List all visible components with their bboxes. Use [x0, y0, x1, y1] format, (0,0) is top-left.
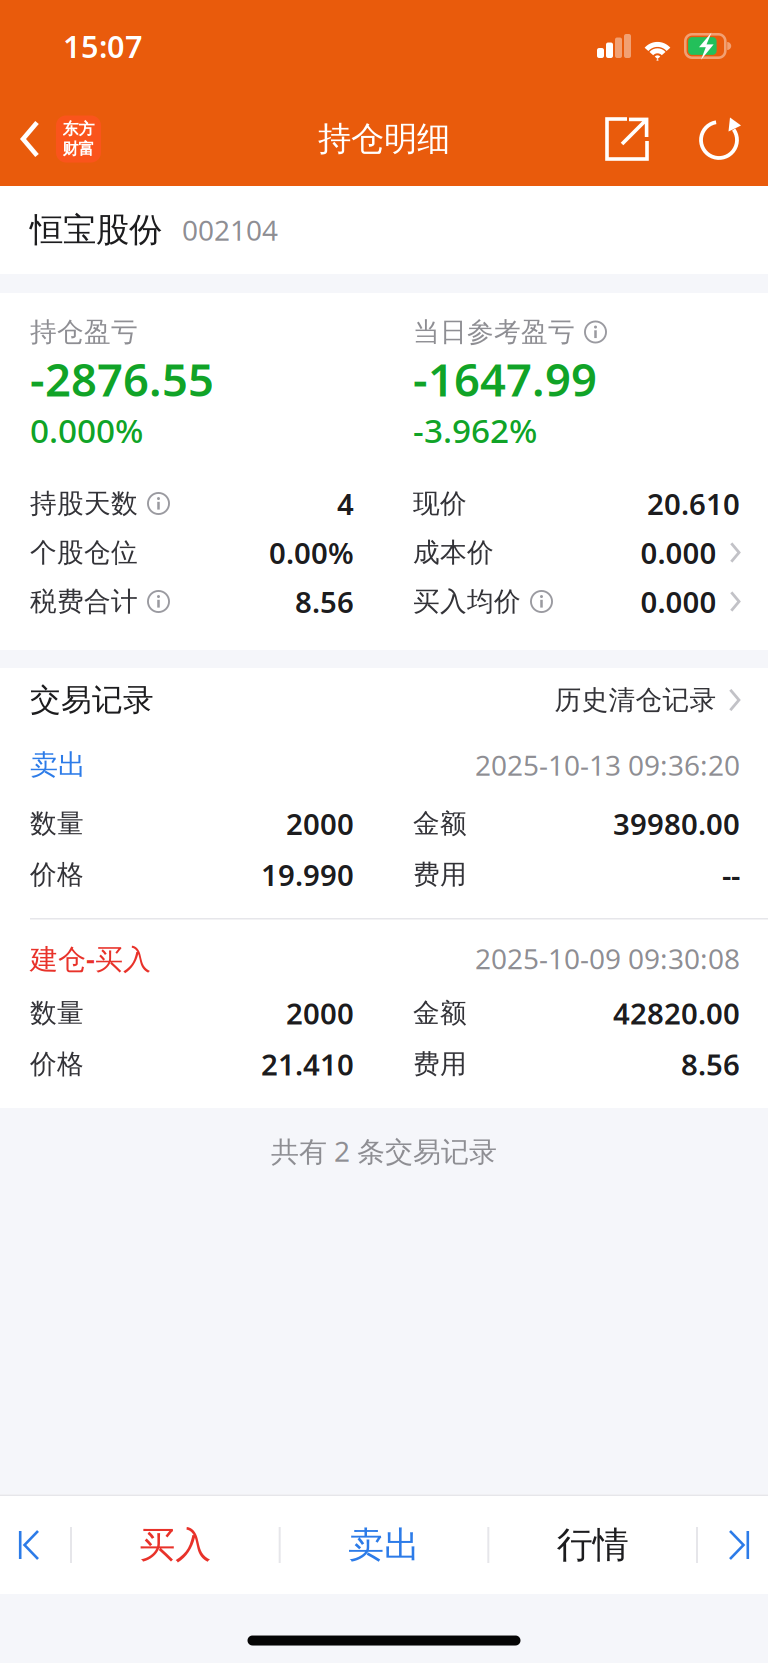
- staticText: 持仓明细: [318, 118, 450, 159]
- staticText: 数量: [30, 807, 84, 840]
- button[interactable]: Back: [0, 99, 101, 178]
- staticText: 金额: [413, 807, 467, 840]
- staticText: -2876.55: [30, 349, 214, 409]
- staticText: 卖出: [348, 1523, 420, 1567]
- button[interactable]: Next: [698, 1496, 768, 1594]
- button[interactable]: 历史清仓记录: [554, 684, 740, 716]
- button[interactable]: 卖出: [281, 1496, 487, 1594]
- button[interactable]: Share: [588, 103, 666, 175]
- staticText: 成本价: [413, 536, 494, 569]
- staticText: 卖出: [30, 748, 86, 782]
- staticText: 2000: [286, 804, 354, 843]
- staticText: 当日参考盈亏: [413, 316, 575, 348]
- staticText: 持股天数: [30, 487, 138, 520]
- staticText: 费用: [413, 1048, 467, 1080]
- staticText: 15:07: [63, 26, 143, 66]
- staticText: 0.00%: [269, 533, 354, 572]
- staticText: 买入: [139, 1523, 211, 1567]
- staticText: 2025-10-13 09:36:20: [475, 746, 740, 784]
- staticText: 2025-10-09 09:30:08: [475, 940, 740, 977]
- staticText: 0.000%: [30, 408, 143, 452]
- button[interactable]: 行情: [489, 1496, 696, 1594]
- staticText: -3.962%: [413, 408, 537, 452]
- staticText: 持仓盈亏: [30, 316, 138, 348]
- staticText: 8.56: [681, 1044, 740, 1083]
- staticText: 20.610: [647, 484, 740, 523]
- button[interactable]: Previous: [0, 1496, 70, 1594]
- staticText: 财富: [62, 139, 94, 159]
- staticText: 交易记录: [30, 681, 154, 719]
- staticText: 费用: [413, 858, 467, 891]
- staticText: 买入均价: [413, 585, 521, 618]
- staticText: 个股仓位: [30, 536, 138, 569]
- staticText: 金额: [413, 997, 467, 1029]
- staticText: 19.990: [261, 855, 354, 894]
- staticText: 数量: [30, 997, 84, 1029]
- staticText: 0.000: [640, 533, 716, 572]
- staticText: 8.56: [295, 582, 354, 621]
- button[interactable]: 买入: [72, 1496, 279, 1594]
- staticText: 002104: [182, 211, 278, 249]
- staticText: 4: [337, 484, 354, 523]
- staticText: 东方: [62, 119, 94, 139]
- staticText: 价格: [30, 858, 84, 891]
- staticText: 恒宝股份: [30, 209, 162, 250]
- staticText: 0.000: [640, 582, 716, 621]
- staticText: 行情: [557, 1523, 629, 1567]
- staticText: 价格: [30, 1048, 84, 1080]
- staticText: 21.410: [261, 1044, 354, 1083]
- staticText: -1647.99: [413, 349, 597, 409]
- staticText: 2000: [286, 993, 354, 1032]
- staticText: 39980.00: [613, 804, 740, 843]
- staticText: 现价: [413, 487, 467, 520]
- staticText: 历史清仓记录: [554, 684, 716, 716]
- staticText: --: [722, 855, 740, 894]
- staticText: 共有 2 条交易记录: [271, 1132, 497, 1170]
- staticText: 建仓-买入: [30, 940, 151, 977]
- button[interactable]: Refresh: [684, 103, 756, 175]
- staticText: 税费合计: [30, 585, 138, 618]
- staticText: 42820.00: [613, 993, 740, 1032]
